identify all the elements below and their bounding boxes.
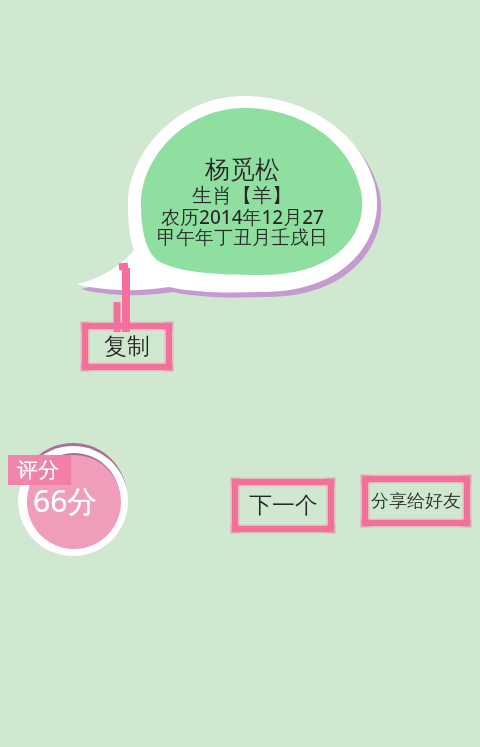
- button[interactable]: 复制: [82, 323, 172, 370]
- staticText: 下一个: [249, 491, 318, 520]
- staticText: 评分: [17, 457, 59, 483]
- staticText: 杨觅松: [205, 154, 280, 185]
- staticText: 生肖【羊】: [192, 183, 292, 208]
- staticText: 分享给好友: [371, 490, 461, 513]
- button[interactable]: Score 66: [18, 446, 128, 556]
- staticText: 甲午年丁丑月壬戌日: [157, 226, 328, 250]
- staticText: 农历2014年12月27: [161, 204, 324, 230]
- button[interactable]: 分享给好友: [362, 476, 470, 526]
- button[interactable]: 下一个: [232, 479, 334, 532]
- staticText: 复制: [104, 332, 150, 361]
- staticText: 66分: [33, 480, 98, 521]
